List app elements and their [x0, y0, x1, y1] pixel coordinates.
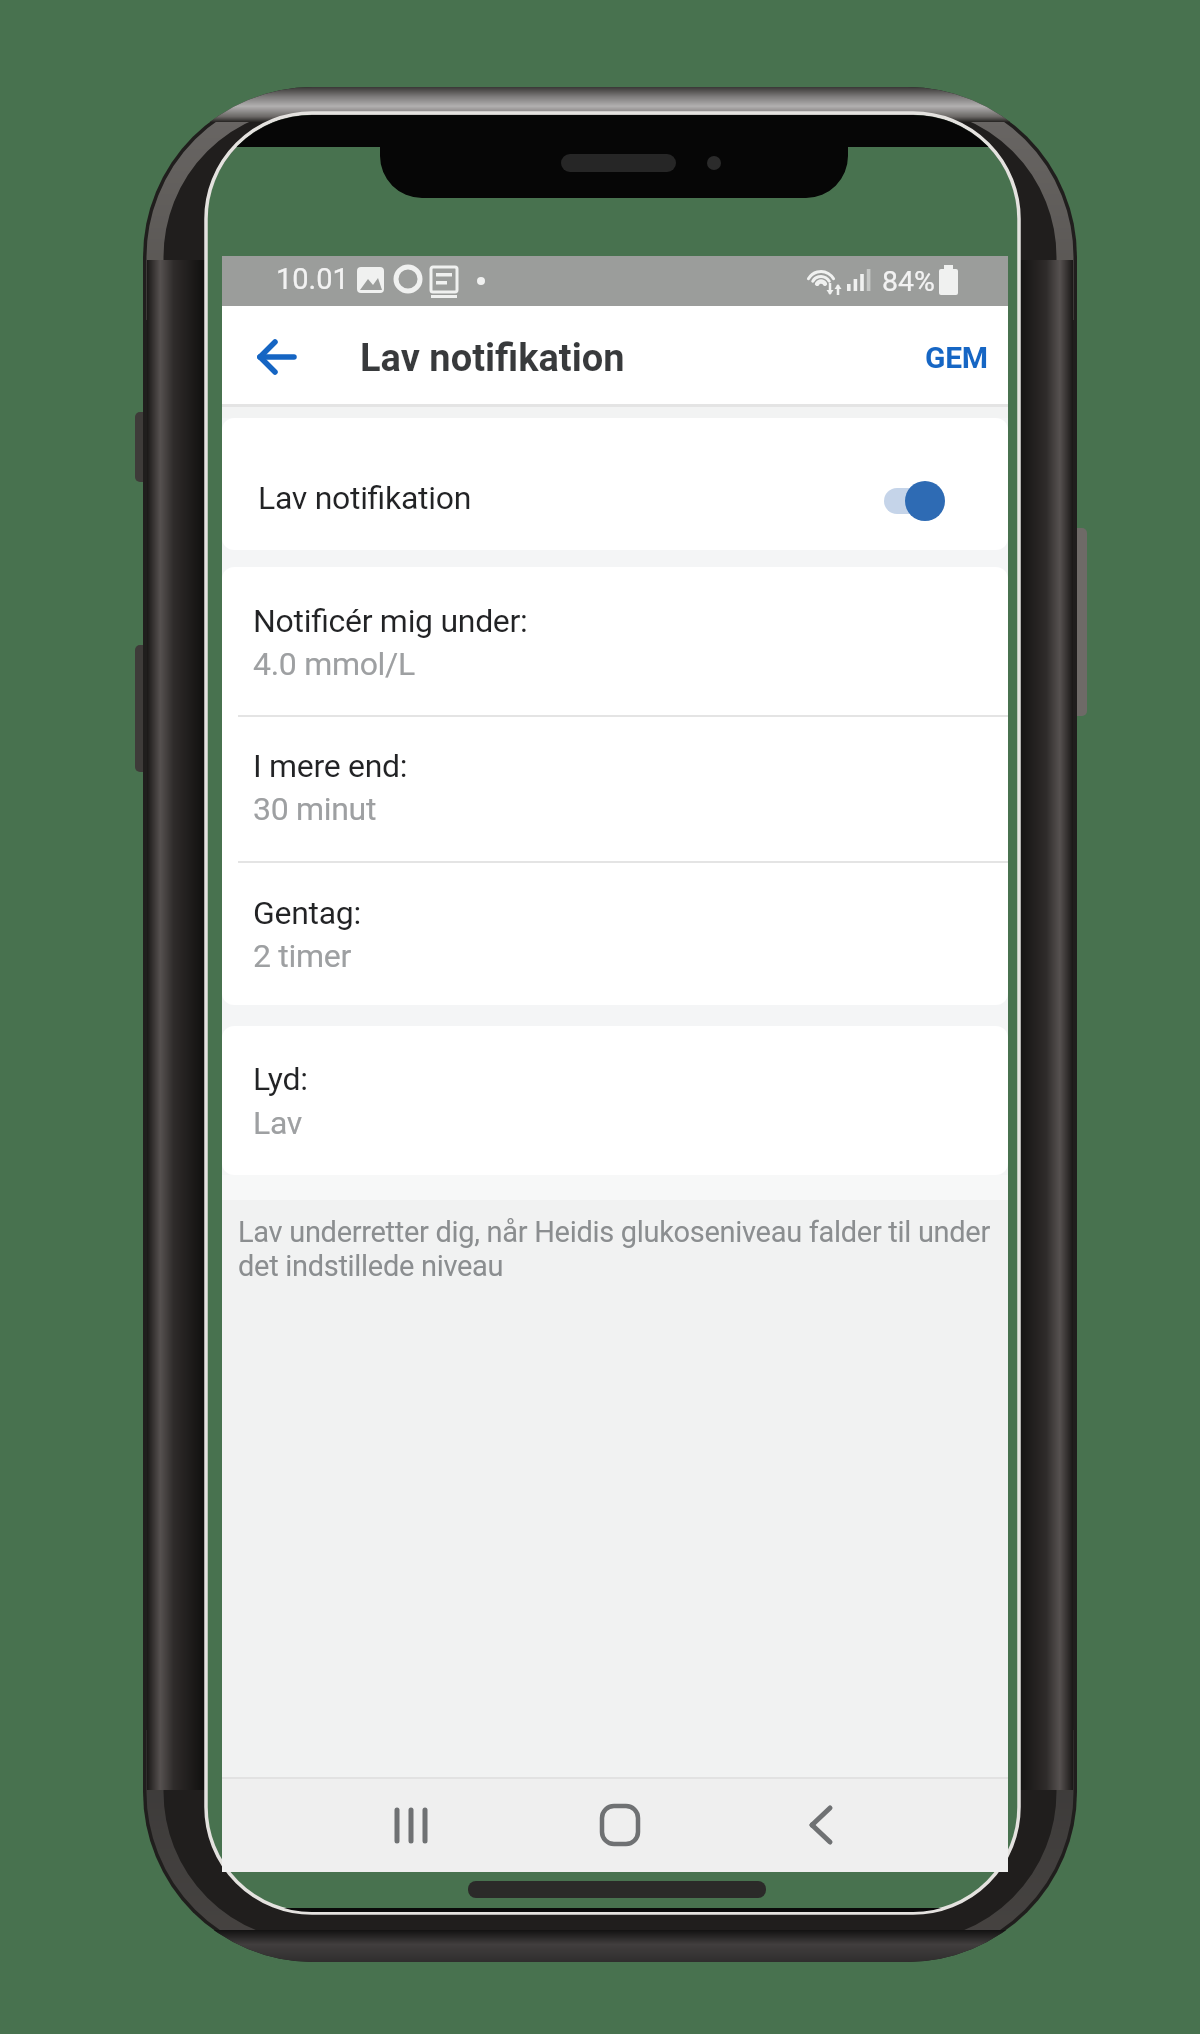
- staticText: det indstillede niveau: [238, 1249, 504, 1283]
- staticText: I mere end:: [253, 747, 408, 785]
- button[interactable]: [362, 1790, 462, 1860]
- button[interactable]: [905, 481, 945, 521]
- staticText: Lyd:: [253, 1060, 308, 1098]
- button[interactable]: [570, 1790, 670, 1860]
- button[interactable]: Notificér mig under:: [222, 567, 1008, 715]
- button[interactable]: [771, 1790, 871, 1860]
- button[interactable]: [240, 326, 312, 386]
- staticText: 10.01: [276, 262, 349, 296]
- staticText: GEM: [925, 340, 988, 375]
- button[interactable]: Lyd:: [222, 1026, 1008, 1175]
- staticText: 30 minut: [253, 790, 377, 828]
- button[interactable]: I mere end:: [222, 717, 1008, 861]
- button[interactable]: Gentag:: [222, 863, 1008, 1005]
- staticText: Gentag:: [253, 894, 361, 932]
- button[interactable]: GEM: [880, 330, 988, 380]
- staticText: Lav underretter dig, når Heidis glukosen…: [238, 1215, 990, 1249]
- staticText: 4.0 mmol/L: [253, 645, 415, 683]
- staticText: 2 timer: [253, 937, 351, 975]
- staticText: Lav: [253, 1104, 303, 1142]
- button[interactable]: Lav notifikation: [222, 418, 1008, 550]
- staticText: Lav notifikation: [360, 336, 625, 381]
- staticText: Notificér mig under:: [253, 602, 528, 640]
- staticText: Lav notifikation: [258, 479, 472, 517]
- staticText: 84%: [882, 265, 935, 298]
